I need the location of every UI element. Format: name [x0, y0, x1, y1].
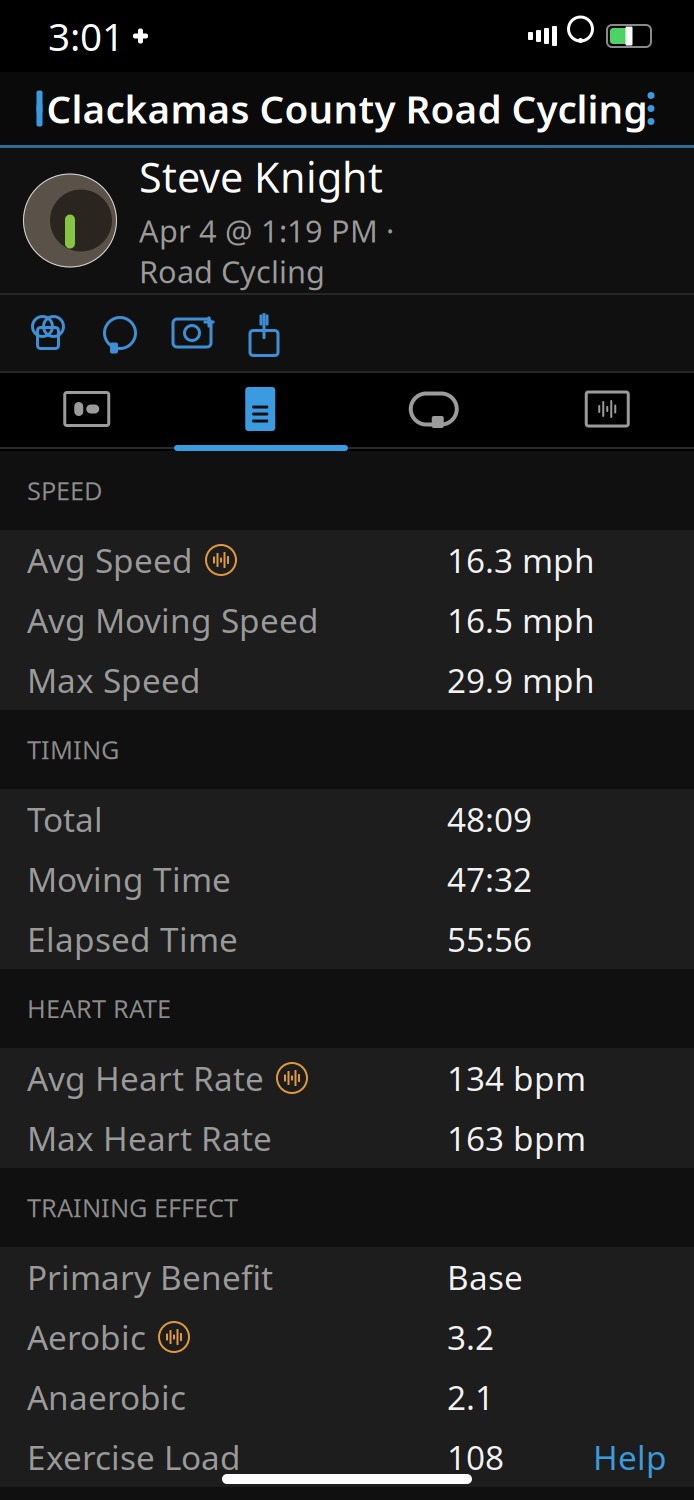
staticText: Clackamas County Road Cycling: [46, 83, 647, 134]
staticText: Aerobic: [27, 1315, 146, 1359]
staticText: 134 bpm: [447, 1056, 586, 1100]
staticText: Max Heart Rate: [27, 1116, 272, 1160]
staticText: 16.5 mph: [447, 598, 595, 642]
button[interactable]: Charts: [520, 373, 694, 445]
staticText: 16.3 mph: [447, 538, 595, 582]
button[interactable]: Total: [0, 789, 694, 849]
staticText: Exercise Load: [27, 1435, 241, 1479]
staticText: SPEED: [27, 474, 102, 507]
staticText: 3:01: [48, 10, 124, 62]
button[interactable]: Anaerobic: [0, 1367, 694, 1427]
button[interactable]: Map: [0, 373, 173, 445]
button[interactable]: Elapsed Time: [0, 909, 694, 969]
staticText: 47:32: [447, 857, 532, 901]
staticText: Apr 4 @ 1:19 PM · Road Cycling: [139, 210, 394, 292]
button[interactable]: Max Heart Rate: [0, 1108, 694, 1168]
button[interactable]: Like: [22, 305, 74, 361]
button[interactable]: Add photo: [166, 305, 218, 361]
staticText: Steve Knight: [139, 149, 383, 204]
button[interactable]: Share: [238, 305, 290, 361]
staticText: Primary Benefit: [27, 1255, 273, 1299]
staticText: Max Speed: [27, 658, 201, 702]
staticText: TIMING: [27, 733, 119, 766]
staticText: HEART RATE: [27, 992, 171, 1025]
staticText: Total: [27, 797, 103, 841]
staticText: Anaerobic: [27, 1375, 186, 1419]
button[interactable]: Exercise Load: [0, 1427, 694, 1487]
button[interactable]: Avg Heart Rate: [0, 1048, 694, 1108]
button[interactable]: More options: [620, 77, 682, 139]
staticText: 3.2: [447, 1315, 494, 1359]
button[interactable]: Back: [12, 77, 74, 139]
staticText: Avg Heart Rate: [27, 1056, 264, 1100]
staticText: Help: [593, 1435, 667, 1479]
button[interactable]: Aerobic: [0, 1307, 694, 1367]
staticText: 48:09: [447, 797, 532, 841]
button[interactable]: Details: [173, 373, 347, 445]
staticText: 108: [447, 1435, 504, 1479]
button[interactable]: Comment: [94, 305, 146, 361]
staticText: Moving Time: [27, 857, 231, 901]
staticText: TRAINING EFFECT: [27, 1191, 238, 1224]
button[interactable]: Laps: [347, 373, 520, 445]
button[interactable]: Moving Time: [0, 849, 694, 909]
button[interactable]: Steve Knight: [0, 148, 694, 293]
staticText: 163 bpm: [447, 1116, 586, 1160]
button[interactable]: Avg Moving Speed: [0, 590, 694, 650]
button[interactable]: Max Speed: [0, 650, 694, 710]
staticText: 55:56: [447, 917, 532, 961]
staticText: Avg Speed: [27, 538, 193, 582]
button[interactable]: Avg Speed: [0, 530, 694, 590]
staticText: Elapsed Time: [27, 917, 238, 961]
staticText: Base: [447, 1255, 523, 1299]
staticText: 29.9 mph: [447, 658, 595, 702]
staticText: Avg Moving Speed: [27, 598, 319, 642]
button[interactable]: Primary Benefit: [0, 1247, 694, 1307]
staticText: 2.1: [447, 1375, 494, 1419]
